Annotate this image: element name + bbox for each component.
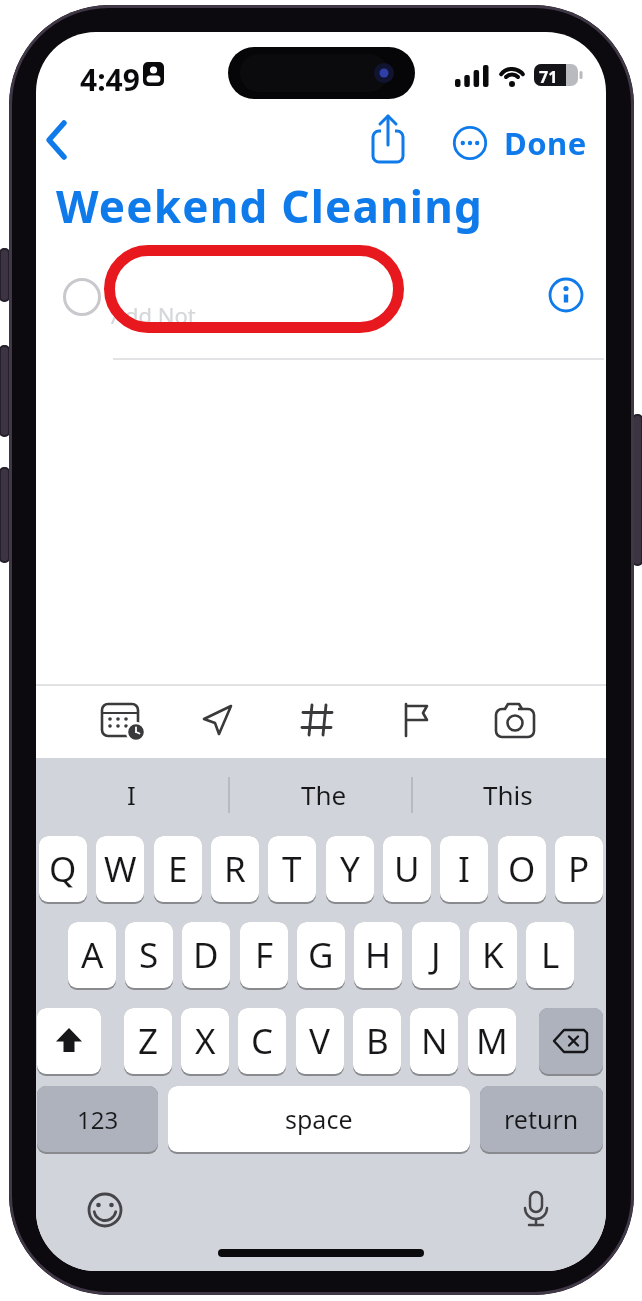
staticText: R	[224, 845, 246, 893]
button[interactable]: P	[555, 836, 603, 902]
button[interactable]: E	[154, 836, 202, 902]
staticText: G	[308, 931, 334, 979]
staticText: 4:49	[80, 59, 140, 100]
button[interactable]: G	[297, 922, 345, 988]
button[interactable]: Y	[326, 836, 374, 902]
staticText: U	[394, 845, 420, 893]
button[interactable]: return	[480, 1086, 603, 1152]
button[interactable]	[539, 1008, 603, 1074]
button[interactable]: K	[469, 922, 517, 988]
button[interactable]: S	[125, 922, 173, 988]
staticText: Q	[49, 845, 77, 893]
staticText: X	[195, 1017, 216, 1065]
button[interactable]: V	[296, 1008, 344, 1074]
staticText: O	[508, 845, 536, 893]
staticText: Add Not	[111, 300, 196, 330]
staticText: S	[139, 931, 159, 979]
staticText: L	[541, 931, 560, 979]
button[interactable]: J	[412, 922, 460, 988]
button[interactable]: Done	[502, 120, 600, 164]
staticText: This	[483, 777, 533, 812]
staticText: A	[81, 931, 104, 979]
button[interactable]: R	[211, 836, 259, 902]
button[interactable]: space	[168, 1086, 470, 1152]
staticText: Weekend Cleaning	[56, 176, 483, 236]
button[interactable]: 123	[37, 1086, 158, 1152]
button[interactable]: X	[181, 1008, 229, 1074]
staticText: Z	[138, 1017, 159, 1065]
button[interactable]: F	[240, 922, 288, 988]
button[interactable]	[198, 700, 238, 740]
button[interactable]: T	[268, 836, 316, 902]
button[interactable]	[299, 700, 337, 740]
staticText: E	[168, 845, 188, 893]
button[interactable]	[452, 125, 488, 161]
staticText: M	[476, 1017, 508, 1065]
button[interactable]	[37, 1008, 101, 1074]
staticText: The	[301, 777, 347, 812]
staticText: D	[193, 931, 219, 979]
staticText: 123	[77, 1103, 119, 1136]
button[interactable]: This	[433, 774, 583, 814]
staticText: T	[282, 845, 302, 893]
staticText: return	[504, 1102, 579, 1136]
button[interactable]: I	[56, 774, 206, 814]
staticText: J	[431, 931, 441, 979]
button[interactable]: Q	[39, 836, 87, 902]
button[interactable]: O	[498, 836, 546, 902]
button[interactable]: I	[440, 836, 488, 902]
staticText: B	[366, 1017, 389, 1065]
button[interactable]: The	[249, 774, 399, 814]
staticText: Y	[340, 845, 360, 893]
button[interactable]	[40, 116, 80, 160]
button[interactable]: C	[238, 1008, 286, 1074]
staticText: K	[482, 931, 504, 979]
staticText: I	[458, 845, 470, 893]
staticText: I	[127, 777, 136, 812]
button[interactable]	[548, 277, 584, 313]
button[interactable]: H	[354, 922, 402, 988]
staticText: H	[365, 931, 391, 979]
staticText: P	[568, 845, 590, 893]
button[interactable]	[520, 1190, 554, 1232]
button[interactable]: Z	[124, 1008, 172, 1074]
staticText: F	[255, 931, 274, 979]
button[interactable]: M	[468, 1008, 516, 1074]
button[interactable]	[494, 700, 538, 740]
button[interactable]: L	[526, 922, 574, 988]
button[interactable]	[398, 700, 436, 740]
button[interactable]	[86, 1192, 124, 1230]
button[interactable]: N	[410, 1008, 458, 1074]
staticText: Done	[504, 122, 587, 164]
button[interactable]: B	[353, 1008, 401, 1074]
staticText: N	[421, 1017, 448, 1065]
staticText: C	[251, 1017, 274, 1065]
button[interactable]: A	[68, 922, 116, 988]
staticText: V	[309, 1017, 331, 1065]
staticText: 71	[539, 66, 558, 88]
staticText: space	[285, 1102, 353, 1136]
button[interactable]: U	[383, 836, 431, 902]
button[interactable]	[367, 112, 411, 164]
staticText: W	[104, 845, 137, 893]
button[interactable]	[100, 700, 146, 742]
button[interactable]: W	[96, 836, 144, 902]
button[interactable]: D	[182, 922, 230, 988]
